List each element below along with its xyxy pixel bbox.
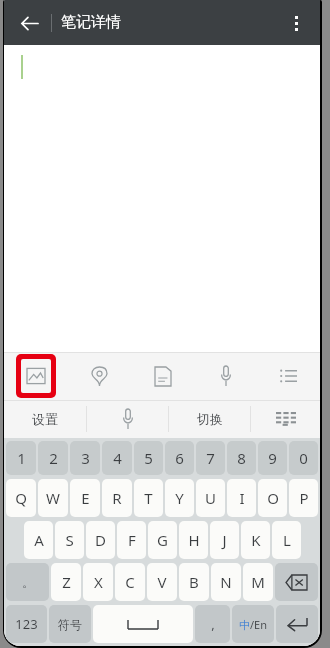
button[interactable]: C — [115, 563, 145, 601]
button[interactable]: F — [117, 521, 146, 559]
button[interactable]: 123 — [6, 605, 47, 643]
button[interactable]: W — [38, 479, 68, 517]
button[interactable]: 1 — [6, 441, 36, 475]
staticText: K — [251, 530, 261, 550]
button[interactable]: Y — [165, 479, 194, 517]
button[interactable]: 7 — [196, 441, 225, 475]
button[interactable]: 设置 — [4, 400, 86, 438]
staticText: 。 — [22, 575, 34, 590]
button[interactable]: Keyboard — [251, 400, 320, 438]
button[interactable]: , — [195, 605, 230, 643]
button[interactable]: Voice — [194, 352, 257, 400]
staticText: /En — [250, 617, 268, 632]
button[interactable]: 5 — [134, 441, 163, 475]
staticText: O — [267, 488, 279, 508]
button[interactable]: L — [272, 521, 301, 559]
button[interactable]: O — [258, 479, 287, 517]
staticText: R — [112, 488, 122, 508]
staticText: , — [211, 615, 215, 633]
staticText: V — [157, 572, 167, 592]
button[interactable]: 0 — [289, 441, 318, 475]
button[interactable]: 6 — [165, 441, 194, 475]
staticText: M — [251, 572, 265, 592]
button[interactable]: X — [83, 563, 113, 601]
button[interactable]: N — [211, 563, 241, 601]
button[interactable]: Enter — [276, 605, 318, 643]
button[interactable]: T — [134, 479, 163, 517]
staticText: X — [94, 572, 103, 592]
button[interactable]: V — [147, 563, 177, 601]
button[interactable]: H — [179, 521, 208, 559]
button[interactable]: K — [241, 521, 270, 559]
staticText: S — [65, 530, 74, 550]
button[interactable]: B — [179, 563, 209, 601]
staticText: J — [222, 530, 227, 550]
staticText: C — [125, 572, 135, 592]
staticText: A — [34, 530, 44, 550]
staticText: 5 — [144, 448, 153, 468]
button[interactable]: E — [70, 479, 100, 517]
staticText: 1 — [17, 448, 26, 468]
staticText: T — [144, 488, 153, 508]
staticText: 9 — [268, 448, 277, 468]
staticText: B — [189, 572, 199, 592]
staticText: F — [128, 530, 136, 550]
button[interactable]: 。 — [6, 563, 49, 601]
button[interactable]: Switch language — [232, 605, 274, 643]
staticText: 8 — [237, 448, 246, 468]
staticText: Y — [175, 488, 184, 508]
button[interactable]: Z — [51, 563, 81, 601]
button[interactable]: 4 — [102, 441, 132, 475]
button[interactable]: 9 — [258, 441, 287, 475]
button[interactable]: J — [210, 521, 239, 559]
staticText: 6 — [175, 448, 184, 468]
button[interactable]: Document — [131, 352, 194, 400]
staticText: U — [205, 488, 216, 508]
button[interactable]: List — [257, 352, 320, 400]
staticText: D — [95, 530, 106, 550]
button[interactable]: Back — [12, 6, 46, 40]
button[interactable]: A — [24, 521, 53, 559]
staticText: 符号 — [58, 617, 82, 632]
staticText: 2 — [49, 448, 58, 468]
button[interactable]: R — [102, 479, 132, 517]
staticText: N — [220, 572, 232, 592]
button[interactable]: Delete — [275, 563, 318, 601]
staticText: 4 — [113, 448, 122, 468]
staticText: I — [239, 488, 245, 508]
button[interactable]: 符号 — [49, 605, 91, 643]
staticText: 切换 — [197, 411, 223, 427]
button[interactable]: 3 — [70, 441, 100, 475]
button[interactable]: 8 — [227, 441, 256, 475]
staticText: W — [46, 488, 60, 508]
staticText: L — [283, 530, 291, 550]
button[interactable]: 切换 — [169, 400, 250, 438]
button[interactable]: 2 — [38, 441, 68, 475]
button[interactable]: P — [289, 479, 318, 517]
staticText: 笔记详情 — [61, 13, 121, 32]
button[interactable]: M — [243, 563, 273, 601]
staticText: E — [81, 488, 90, 508]
button[interactable]: Q — [6, 479, 36, 517]
button[interactable]: Insert image — [21, 359, 51, 393]
staticText: 0 — [299, 448, 308, 468]
button[interactable]: I — [227, 479, 256, 517]
staticText: 7 — [206, 448, 215, 468]
button[interactable]: Space — [93, 605, 193, 643]
staticText: H — [188, 530, 200, 550]
staticText: Q — [15, 488, 27, 508]
button[interactable]: D — [86, 521, 115, 559]
button[interactable]: Voice input — [87, 400, 168, 438]
button[interactable]: More options — [279, 6, 313, 40]
button[interactable]: S — [55, 521, 84, 559]
staticText: 设置 — [32, 411, 58, 427]
button[interactable]: G — [148, 521, 177, 559]
button[interactable]: Location — [68, 352, 131, 400]
staticText: Z — [62, 572, 71, 592]
staticText: P — [299, 488, 309, 508]
staticText: 中 — [239, 618, 250, 632]
staticText: G — [157, 530, 168, 550]
button[interactable]: U — [196, 479, 225, 517]
staticText: 123 — [15, 615, 38, 633]
staticText: 3 — [81, 448, 90, 468]
